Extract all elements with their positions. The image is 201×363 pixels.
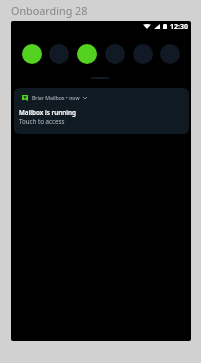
other: Briar Mailbox [22,95,28,101]
button[interactable] [160,44,180,64]
staticText: Mailbox is running [19,108,77,117]
staticText: Onboarding 28 [11,3,88,18]
button[interactable] [22,44,42,64]
button[interactable]: Briar Mailbox [14,88,189,134]
button[interactable] [133,44,153,64]
button[interactable] [105,44,125,64]
staticText: Briar Mailbox • now [32,94,80,101]
staticText: Touch to access [19,117,65,125]
button[interactable] [49,44,69,64]
staticText: 12:30 [170,22,188,32]
button[interactable] [77,44,97,64]
